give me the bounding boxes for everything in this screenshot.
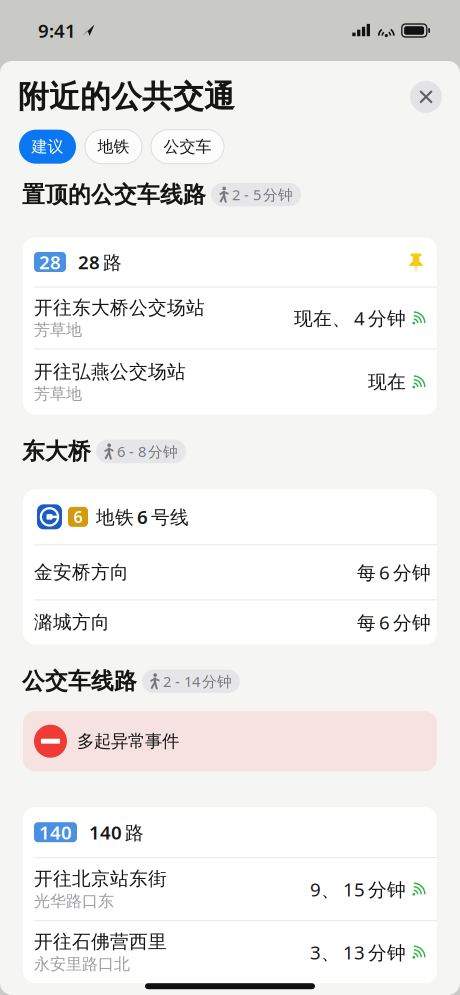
button[interactable]: 公交车	[151, 130, 224, 164]
staticText: 现在、 4 分钟	[294, 306, 406, 330]
staticText: 芳草地	[34, 320, 82, 340]
button[interactable]: 地铁	[85, 130, 142, 164]
staticText: 开往东大桥公交场站	[34, 296, 205, 319]
button[interactable]: 开往弘燕公交场站	[23, 349, 437, 414]
staticText: 公交车线路	[22, 667, 137, 695]
button[interactable]: 28	[23, 237, 437, 286]
button[interactable]: 建议	[19, 130, 76, 164]
button[interactable]: 多起异常事件	[23, 711, 437, 771]
staticText: 光华路口东	[34, 891, 114, 911]
staticText: 建议	[31, 137, 63, 156]
staticText: 永安里路口北	[34, 954, 130, 974]
button[interactable]: 140	[23, 807, 437, 857]
staticText: 6 - 8 分钟	[117, 442, 178, 461]
staticText: 开往北京站东街	[34, 867, 167, 890]
staticText: 地铁	[97, 137, 129, 156]
button[interactable]: 6	[23, 489, 437, 544]
staticText: 2 - 5 分钟	[232, 185, 293, 204]
staticText: 现在	[368, 370, 406, 393]
button[interactable]: 潞城方向	[23, 600, 437, 644]
staticText: 9:41	[38, 18, 76, 43]
staticText: 附近的公共交通	[18, 78, 235, 116]
staticText: 6	[73, 506, 82, 527]
staticText: 每 6 分钟	[357, 560, 431, 585]
button[interactable]: 金安桥方向	[23, 545, 437, 599]
button[interactable]: 关闭	[410, 81, 442, 113]
staticText: 芳草地	[34, 384, 82, 404]
staticText: 置顶的公交车线路	[22, 181, 206, 208]
staticText: 金安桥方向	[34, 561, 129, 584]
staticText: 多起异常事件	[77, 730, 179, 752]
staticText: 3、 13 分钟	[310, 940, 406, 965]
staticText: 2 - 14 分钟	[163, 671, 232, 691]
button[interactable]: 开往东大桥公交场站	[23, 287, 437, 348]
button[interactable]: 开往北京站东街	[23, 858, 437, 920]
staticText: 公交车	[163, 137, 211, 156]
staticText: 潞城方向	[34, 611, 110, 634]
staticText: 28 路	[78, 250, 122, 274]
staticText: 开往石佛营西里	[34, 930, 167, 953]
staticText: 140 路	[89, 820, 144, 845]
button[interactable]: 开往石佛营西里	[23, 921, 437, 983]
staticText: 开往弘燕公交场站	[34, 360, 186, 383]
staticText: 每 6 分钟	[357, 610, 431, 635]
staticText: 地铁 6 号线	[96, 504, 189, 529]
staticText: 140	[39, 820, 72, 845]
staticText: 28	[39, 250, 61, 274]
staticText: 东大桥	[22, 437, 91, 465]
staticText: 9、 15 分钟	[310, 877, 406, 902]
